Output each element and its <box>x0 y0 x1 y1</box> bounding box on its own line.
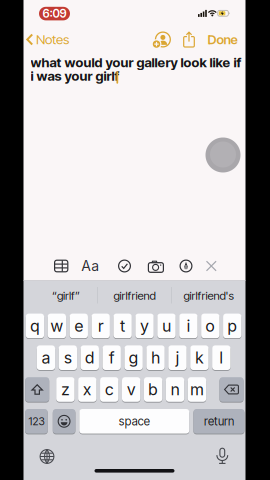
staticText: girlfriend <box>113 289 155 302</box>
button[interactable]: e <box>70 314 88 338</box>
staticText: f <box>109 348 115 367</box>
staticText: r <box>98 316 104 336</box>
button[interactable]: z <box>56 377 75 402</box>
button[interactable]: Dictation <box>212 445 232 467</box>
staticText: u <box>162 316 171 336</box>
button[interactable]: girlfriend <box>99 283 169 307</box>
button[interactable]: n <box>166 377 184 402</box>
button[interactable]: s <box>59 345 77 370</box>
staticText: Aa <box>81 257 99 274</box>
staticText: space <box>119 414 150 428</box>
staticText: a <box>41 348 50 367</box>
button[interactable]: Insert photo <box>146 256 166 276</box>
staticText: Done <box>207 32 237 47</box>
staticText: s <box>64 348 72 367</box>
button[interactable]: Markup <box>176 256 196 276</box>
button[interactable]: t <box>113 314 132 338</box>
button[interactable]: j <box>168 345 187 370</box>
button[interactable]: u <box>157 314 176 338</box>
button[interactable]: Share <box>181 30 197 49</box>
button[interactable]: w <box>48 314 66 338</box>
button[interactable]: Emoji <box>53 409 75 434</box>
button[interactable]: y <box>135 314 154 338</box>
button[interactable]: v <box>122 377 140 402</box>
button[interactable]: Stop screen recording <box>39 7 70 20</box>
button[interactable]: f <box>102 345 121 370</box>
staticText: h <box>151 348 160 367</box>
button[interactable]: return <box>193 409 244 434</box>
button[interactable]: r <box>91 314 110 338</box>
button[interactable]: Insert table <box>51 256 71 276</box>
staticText: w <box>50 316 63 336</box>
staticText: 123 <box>28 415 44 428</box>
staticText: girlfriend's <box>183 289 233 302</box>
button[interactable]: Shift <box>25 377 49 402</box>
button[interactable]: h <box>146 345 165 370</box>
staticText: m <box>190 380 204 399</box>
staticText: p <box>227 316 237 336</box>
button[interactable]: Share note with people <box>151 30 171 50</box>
button[interactable]: k <box>190 345 209 370</box>
staticText: k <box>195 348 204 367</box>
button[interactable]: g <box>124 345 143 370</box>
button[interactable]: x <box>78 377 96 402</box>
button[interactable]: space <box>79 409 189 434</box>
staticText: j <box>175 348 179 367</box>
button[interactable]: m <box>188 377 206 402</box>
button[interactable]: o <box>201 314 219 338</box>
staticText: i <box>186 316 190 336</box>
button[interactable]: Numbers <box>25 409 48 434</box>
button[interactable]: p <box>223 314 241 338</box>
staticText: return <box>204 414 234 428</box>
button[interactable]: Format <box>80 256 100 276</box>
button[interactable]: i <box>179 314 198 338</box>
staticText: d <box>85 348 95 367</box>
staticText: x <box>83 380 92 399</box>
staticText: b <box>148 380 158 399</box>
staticText: 6:09 <box>42 6 66 21</box>
button[interactable]: Dismiss keyboard <box>203 258 219 274</box>
staticText: v <box>127 380 136 399</box>
staticText: o <box>205 316 215 336</box>
button[interactable]: Done <box>207 32 237 47</box>
staticText: c <box>105 380 114 399</box>
staticText: y <box>140 316 149 336</box>
button[interactable]: Next keyboard <box>36 445 58 467</box>
button[interactable]: q <box>26 314 44 338</box>
button[interactable]: d <box>81 345 99 370</box>
button[interactable]: l <box>212 345 230 370</box>
button[interactable]: Delete <box>219 377 243 402</box>
button[interactable]: Checklist <box>114 256 134 276</box>
button[interactable]: b <box>144 377 162 402</box>
button[interactable]: girlfriend's <box>173 283 243 307</box>
staticText: g <box>129 348 139 367</box>
button[interactable]: a <box>37 345 55 370</box>
staticText: n <box>171 380 180 399</box>
staticText: e <box>74 316 83 336</box>
staticText: q <box>30 316 40 336</box>
staticText: t <box>120 316 125 336</box>
staticText: Notes <box>36 31 69 47</box>
button[interactable]: “girlf” <box>31 283 101 307</box>
staticText: what would your gallery look like if <box>30 54 241 70</box>
staticText: “girlf” <box>52 289 80 302</box>
staticText: z <box>61 380 70 399</box>
button[interactable]: c <box>100 377 118 402</box>
staticText: i was your girlf <box>30 68 119 84</box>
button[interactable]: Back to Notes <box>26 29 96 49</box>
staticText: l <box>219 348 223 367</box>
